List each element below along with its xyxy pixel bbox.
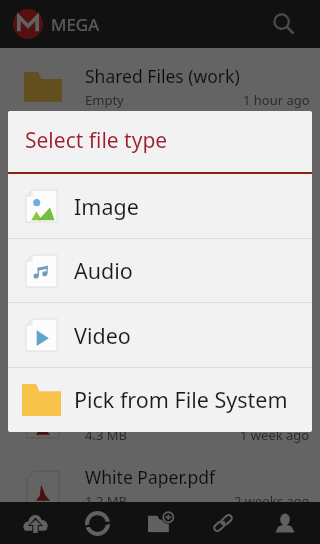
- staticText: 1.2 MB: [85, 492, 127, 510]
- staticText: Photos: [85, 265, 143, 289]
- staticText: Yesterday: [250, 225, 310, 243]
- staticText: Presentation.key: [85, 399, 223, 423]
- staticText: 4.3 MB: [85, 426, 127, 444]
- staticText: 5 days ago: [244, 359, 310, 377]
- staticText: Camera Uploads: [85, 198, 221, 222]
- button[interactable]: Account: [257, 502, 313, 544]
- button[interactable]: Image: [8, 174, 312, 238]
- staticText: 1 hour ago: [243, 91, 310, 109]
- staticText: 3 hours ago: [237, 158, 310, 176]
- staticText: Shared Files (work): [85, 64, 240, 88]
- button[interactable]: Sync: [69, 502, 125, 544]
- staticText: 128 items: [85, 292, 145, 310]
- button[interactable]: Audio: [8, 238, 312, 303]
- staticText: 2 weeks ago: [234, 492, 310, 510]
- staticText: 1 week ago: [240, 426, 310, 444]
- staticText: Documents: [85, 131, 180, 155]
- button[interactable]: Pick from File System: [8, 367, 312, 432]
- button[interactable]: Upload: [7, 502, 63, 544]
- button[interactable]: Links: [195, 502, 251, 544]
- button[interactable]: White Paper.pdf: [0, 456, 320, 518]
- button[interactable]: New folder: [132, 502, 188, 544]
- staticText: White Paper.pdf: [85, 465, 216, 489]
- staticText: 2 days ago: [244, 292, 310, 310]
- button[interactable]: Video: [8, 303, 312, 367]
- staticText: 9 items: [85, 359, 130, 377]
- staticText: Select file type: [25, 126, 168, 155]
- button[interactable]: Photos: [0, 256, 320, 318]
- button[interactable]: Presentation.key: [0, 390, 320, 452]
- staticText: Image: [74, 192, 139, 221]
- staticText: MEGA: [51, 13, 100, 36]
- staticText: Audio: [74, 256, 133, 285]
- staticText: Projects: [85, 332, 151, 356]
- staticText: 4 items: [85, 158, 130, 176]
- staticText: Empty: [85, 225, 124, 243]
- staticText: Empty: [85, 91, 124, 109]
- button[interactable]: Projects: [0, 323, 320, 385]
- button[interactable]: Search: [260, 0, 308, 48]
- staticText: Pick from File System: [74, 385, 288, 414]
- button[interactable]: Select file type: [8, 111, 312, 172]
- button[interactable]: Shared Files (work): [0, 55, 320, 117]
- button[interactable]: Documents: [0, 122, 320, 184]
- staticText: Video: [74, 321, 131, 350]
- button[interactable]: Camera Uploads: [0, 189, 320, 251]
